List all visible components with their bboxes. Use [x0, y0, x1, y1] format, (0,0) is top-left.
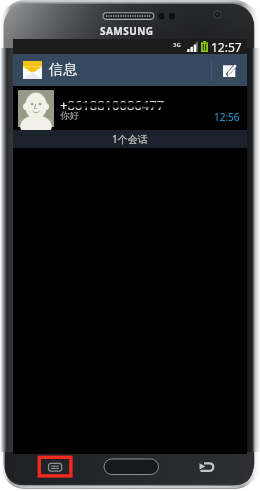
staticText: 信息: [49, 61, 77, 79]
button[interactable]: Back: [196, 459, 218, 475]
button[interactable]: Home: [104, 459, 158, 474]
staticText: 12:56: [214, 110, 240, 124]
staticText: +8618810086477: [60, 96, 165, 110]
staticText: 12:57: [211, 39, 242, 54]
staticText: 3G: [173, 41, 181, 49]
staticText: SAMSUNG: [100, 24, 154, 38]
staticText: 你好: [60, 110, 79, 122]
button[interactable]: +8618810086477: [13, 86, 247, 130]
button[interactable]: Menu: [38, 456, 72, 477]
staticText: 1个会话: [112, 132, 148, 146]
button[interactable]: New message: [212, 54, 247, 86]
